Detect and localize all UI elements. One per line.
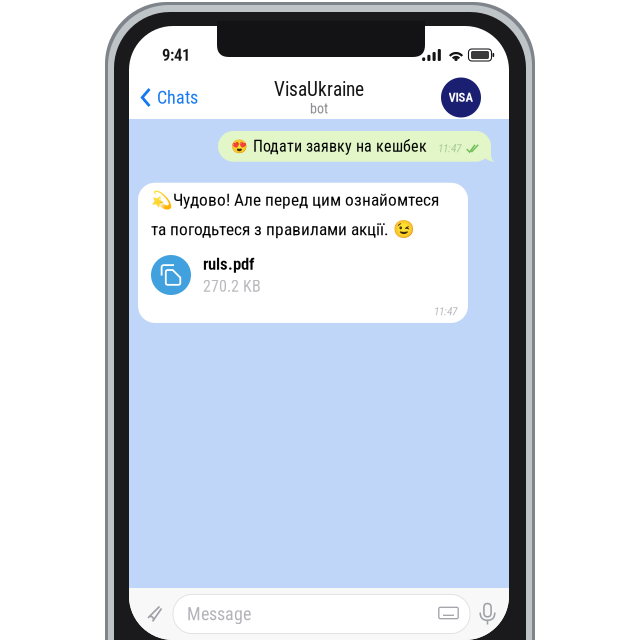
button[interactable]: 💫Чудово! Але перед цим ознайомтеся та по… [138,183,468,323]
staticText: bot [310,101,328,117]
staticText: 11:47 [438,142,461,155]
staticText: 270.2 KB [203,277,261,296]
button[interactable]: 😍 [218,131,491,162]
staticText: 9:41 [162,45,190,65]
staticText: Chats [157,87,198,108]
button[interactable]: Record voice message [470,592,505,635]
staticText: 11:47 [434,305,457,318]
button[interactable]: Chats [129,78,198,117]
staticText: Подати заявку на кешбек [253,137,427,156]
staticText: ruls.pdf [203,254,254,274]
staticText: 😍 [231,139,248,154]
button[interactable]: Attach file [136,592,173,635]
staticText: VISA [448,90,473,105]
staticText: VisaUkraine [274,78,364,101]
staticText: Message [187,603,251,625]
staticText: 💫Чудово! Але перед цим ознайомтеся та по… [151,190,439,239]
button[interactable]: VisaUkraine profile [441,77,509,117]
